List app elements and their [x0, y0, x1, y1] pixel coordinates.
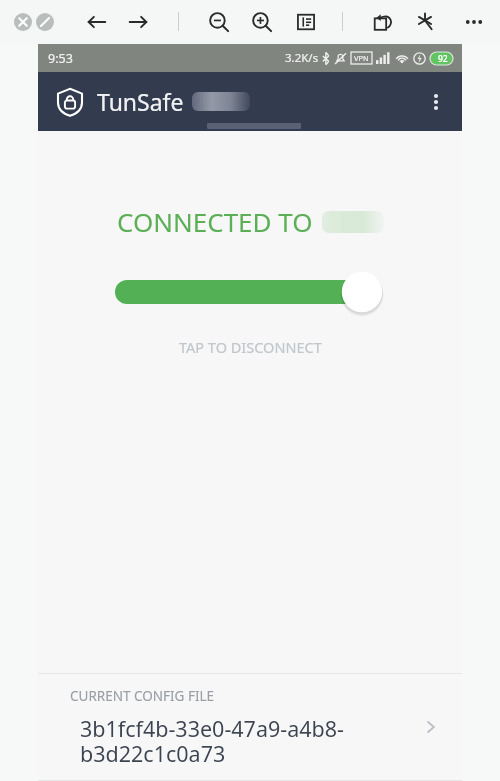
- staticText: VPN: [354, 53, 369, 63]
- button[interactable]: More options: [418, 84, 454, 120]
- staticText: CONNECTED TO: [117, 204, 313, 239]
- staticText: CURRENT CONFIG FILE: [70, 687, 215, 705]
- staticText: 3.2K/s: [285, 50, 319, 66]
- button[interactable]: Rotate: [369, 9, 395, 35]
- button[interactable]: Close: [14, 13, 32, 31]
- staticText: 9:53: [48, 50, 73, 67]
- button[interactable]: Effects: [412, 9, 438, 35]
- staticText: 92: [438, 53, 448, 65]
- other: TunSafe: [55, 87, 85, 117]
- button[interactable]: Forward: [125, 9, 151, 35]
- button[interactable]: More options: [462, 10, 486, 34]
- button[interactable]: CURRENT CONFIG FILE: [38, 674, 462, 780]
- staticText: TAP TO DISCONNECT: [179, 337, 322, 357]
- staticText: 3b1fcf4b-33e0-47a9-a4b8- b3d22c1c0a73: [80, 714, 344, 768]
- button[interactable]: Back: [84, 9, 110, 35]
- button[interactable]: Zoom out: [206, 9, 232, 35]
- button[interactable]: Block: [36, 13, 54, 31]
- staticText: TunSafe: [97, 86, 184, 117]
- button[interactable]: Zoom in: [249, 9, 275, 35]
- button[interactable]: Tap to disconnect: [38, 266, 462, 318]
- button[interactable]: Layout: [293, 9, 319, 35]
